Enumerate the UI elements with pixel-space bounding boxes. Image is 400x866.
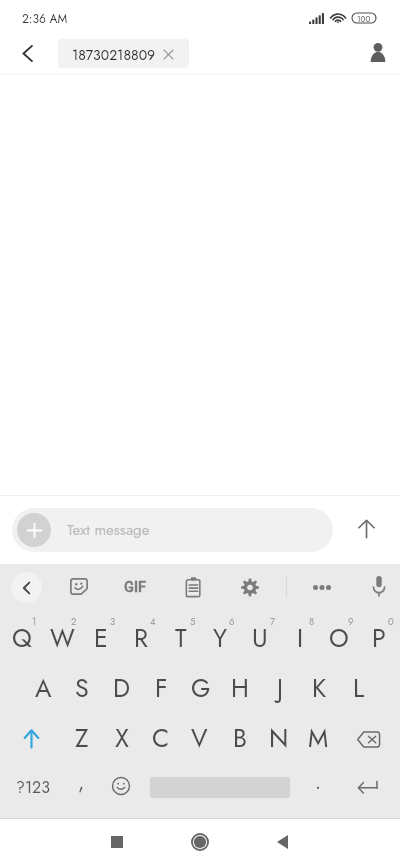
button[interactable]: A — [23, 661, 63, 711]
staticText: E — [94, 620, 108, 656]
staticText: . — [315, 768, 321, 797]
staticText: W — [50, 620, 75, 656]
button[interactable]: Text message — [12, 508, 333, 552]
button[interactable]: B — [220, 711, 259, 761]
button[interactable]: Back — [261, 821, 303, 863]
staticText: U — [252, 620, 268, 656]
staticText: T — [175, 620, 187, 656]
button[interactable]: K — [299, 661, 339, 711]
button[interactable]: Keyboard settings — [233, 570, 267, 604]
button[interactable]: Emoji — [101, 759, 141, 813]
button[interactable]: Y — [200, 611, 240, 661]
button[interactable]: Home — [179, 821, 221, 863]
staticText: ?123 — [16, 776, 50, 799]
staticText: Y — [213, 620, 228, 656]
staticText: L — [353, 670, 365, 706]
staticText: G — [191, 670, 211, 706]
staticText: P — [372, 620, 386, 656]
button[interactable]: G — [181, 661, 221, 711]
button[interactable]: Backspace — [341, 714, 396, 764]
button[interactable]: More options — [305, 570, 339, 604]
button[interactable]: Clipboard — [176, 570, 210, 604]
button[interactable]: Q — [2, 611, 42, 661]
button[interactable]: Back — [14, 39, 42, 67]
button[interactable]: Shift — [4, 713, 59, 763]
staticText: I — [297, 620, 304, 656]
button[interactable]: P — [359, 611, 399, 661]
staticText: 1 — [32, 615, 37, 629]
button[interactable]: C — [141, 711, 180, 761]
button[interactable]: X — [102, 711, 141, 761]
button[interactable]: ?123 — [5, 759, 60, 813]
staticText: Z — [75, 720, 89, 756]
staticText: 2:36 AM — [22, 10, 68, 27]
button[interactable]: Voice input — [362, 569, 396, 603]
staticText: 2 — [71, 615, 77, 629]
staticText: 18730218809 — [72, 45, 156, 65]
staticText: X — [115, 720, 129, 756]
button[interactable]: N — [259, 711, 298, 761]
button[interactable]: 18730218809 — [58, 39, 189, 68]
staticText: C — [152, 720, 170, 756]
button[interactable]: R — [121, 611, 161, 661]
staticText: Q — [12, 620, 32, 656]
button[interactable]: V — [180, 711, 219, 761]
button[interactable]: Hide toolbar — [11, 572, 42, 603]
staticText: 5 — [190, 615, 196, 629]
staticText: J — [277, 670, 284, 706]
button[interactable]: Stickers — [62, 569, 96, 603]
staticText: O — [329, 620, 349, 656]
staticText: 100 — [357, 13, 371, 23]
button[interactable]: Add attachment — [17, 513, 51, 547]
staticText: 9 — [348, 615, 354, 629]
staticText: H — [231, 670, 249, 706]
staticText: GIF — [124, 579, 146, 596]
button[interactable]: Enter — [340, 759, 395, 813]
button[interactable]: H — [220, 661, 260, 711]
button[interactable]: T — [161, 611, 201, 661]
staticText: 8 — [309, 615, 315, 629]
staticText: S — [75, 670, 89, 706]
staticText: V — [191, 720, 208, 756]
button[interactable]: O — [319, 611, 359, 661]
button[interactable]: M — [299, 711, 338, 761]
button[interactable]: W — [42, 611, 82, 661]
staticText: F — [155, 670, 168, 706]
button[interactable]: E — [81, 611, 121, 661]
button[interactable]: Send — [344, 506, 388, 550]
button[interactable]: , — [61, 759, 101, 813]
staticText: M — [308, 720, 329, 756]
button[interactable]: Contact details — [361, 35, 395, 69]
staticText: 3 — [110, 615, 116, 629]
button[interactable]: Z — [62, 711, 101, 761]
button[interactable]: Recent apps — [96, 821, 138, 863]
button[interactable]: GIF — [118, 569, 152, 603]
staticText: B — [233, 720, 247, 756]
button[interactable]: F — [141, 661, 181, 711]
staticText: 0 — [388, 615, 394, 629]
staticText: 7 — [270, 615, 275, 629]
staticText: N — [269, 720, 289, 756]
staticText: K — [312, 670, 327, 706]
staticText: D — [113, 670, 131, 706]
staticText: R — [134, 620, 149, 656]
button[interactable]: J — [260, 661, 300, 711]
button[interactable]: I — [280, 611, 320, 661]
button[interactable]: Space — [141, 759, 299, 813]
button[interactable]: S — [62, 661, 102, 711]
button[interactable]: . — [299, 759, 337, 813]
staticText: 6 — [229, 615, 235, 629]
staticText: , — [78, 768, 85, 797]
staticText: 4 — [150, 615, 156, 629]
button[interactable]: U — [240, 611, 280, 661]
staticText: A — [35, 670, 52, 706]
button[interactable]: L — [339, 661, 379, 711]
button[interactable]: D — [102, 661, 142, 711]
staticText: Text message — [67, 519, 150, 541]
